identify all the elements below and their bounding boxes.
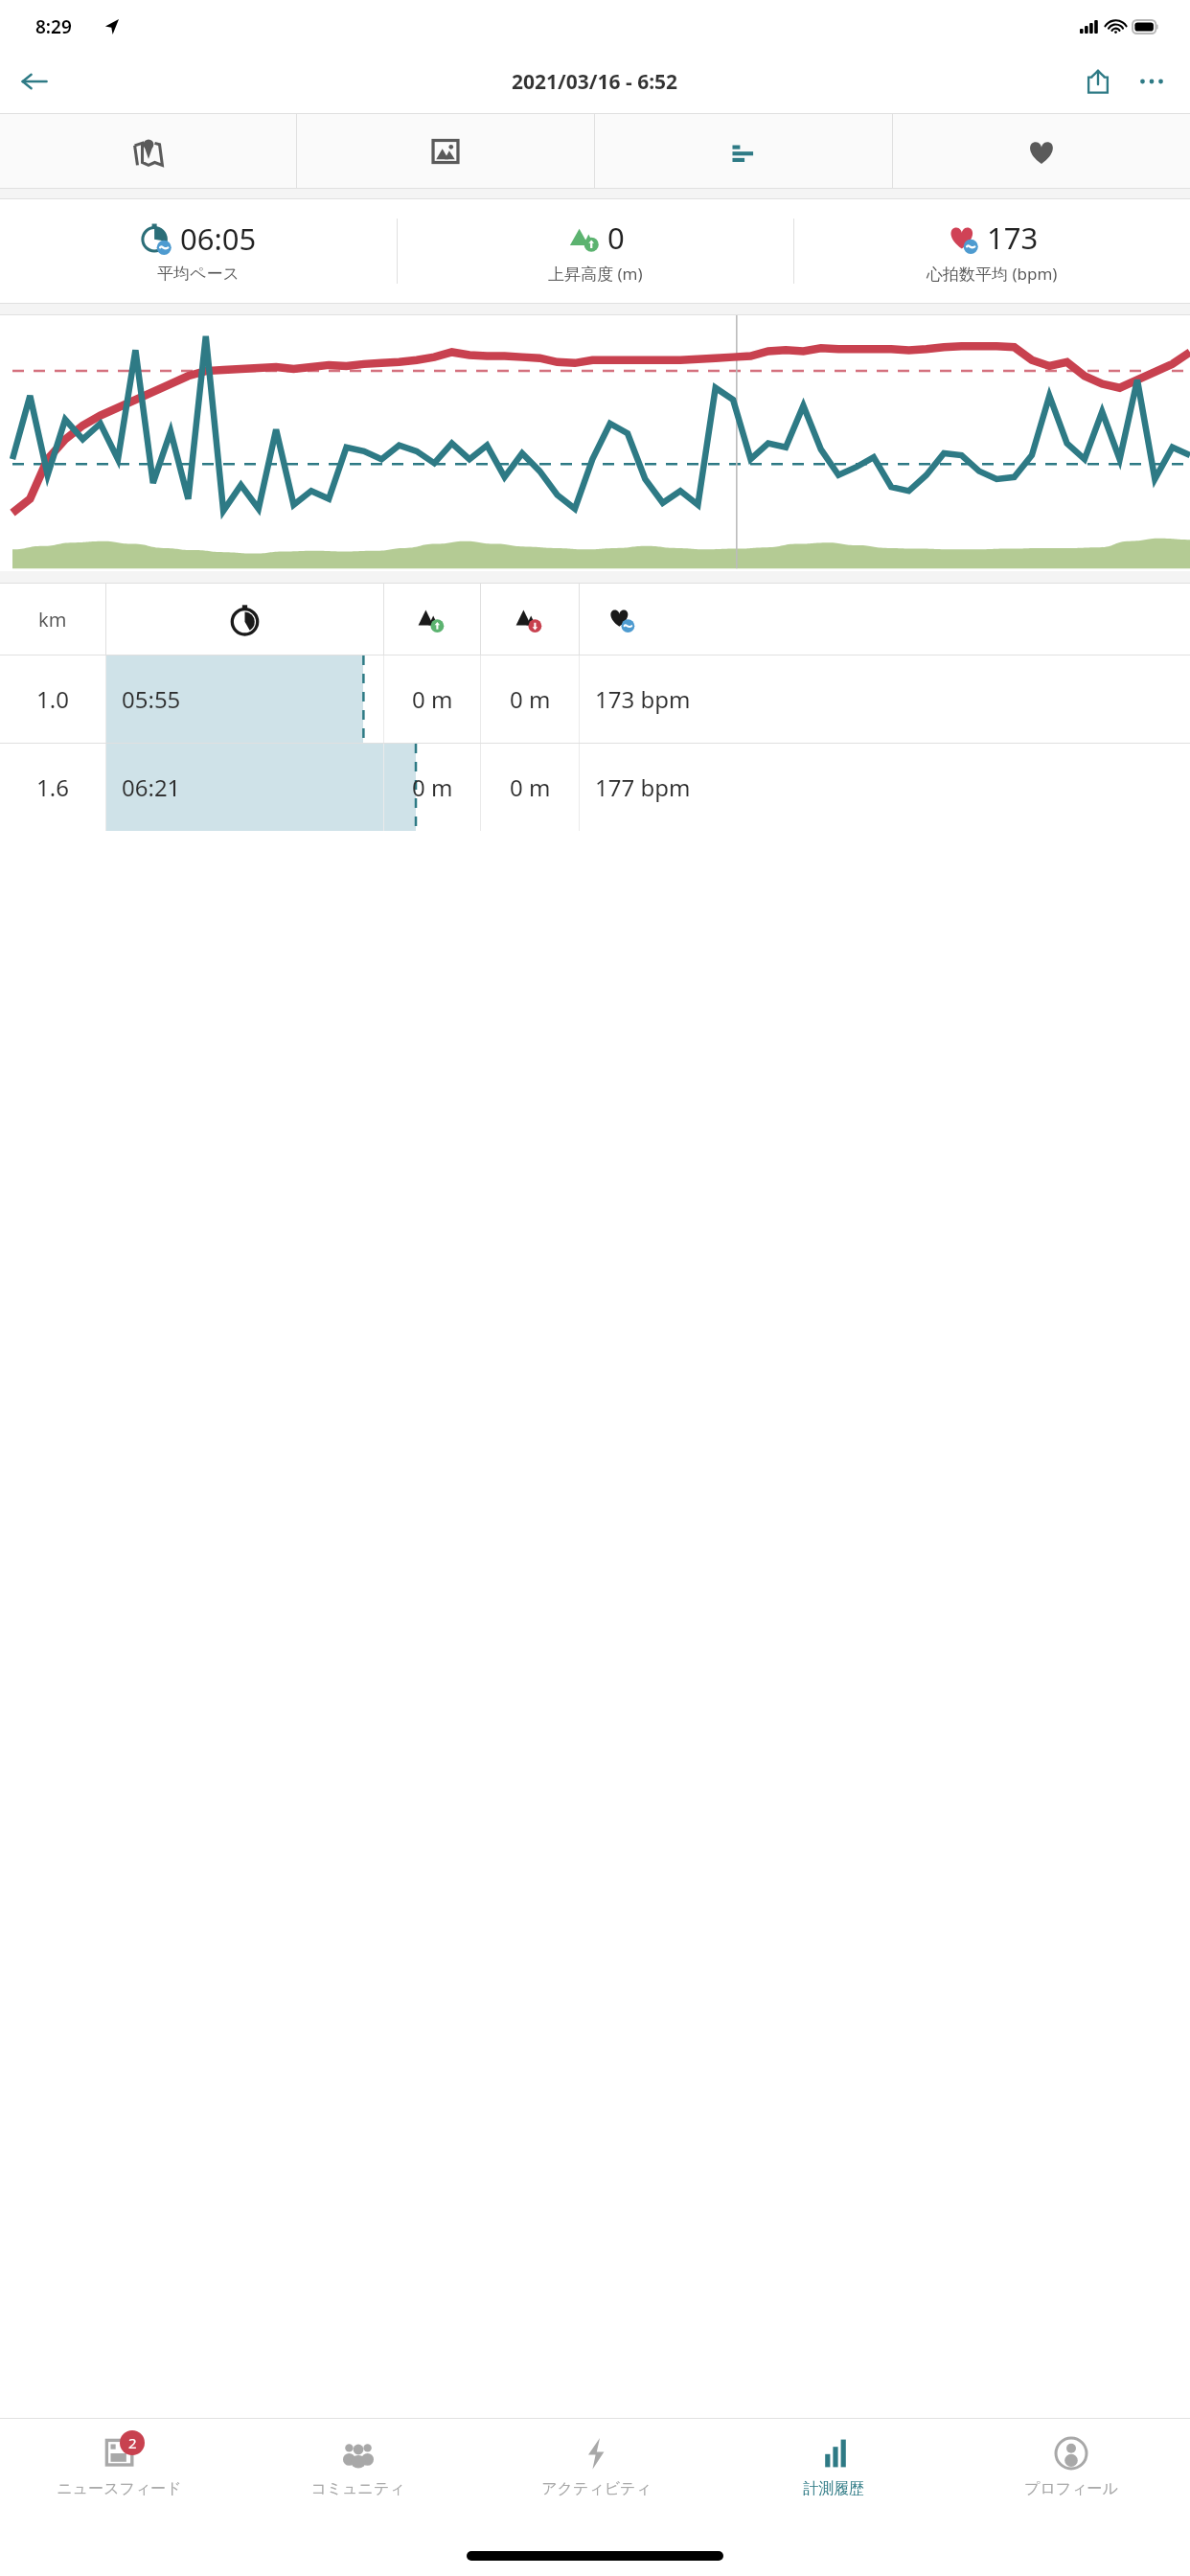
staticText: ニュースフィード: [57, 2479, 182, 2498]
staticText: 1.0: [36, 683, 69, 715]
button[interactable]: 06:05: [0, 199, 397, 303]
staticText: 177 bpm: [595, 771, 691, 803]
button[interactable]: Map tab: [0, 114, 296, 188]
staticText: 上昇高度 (m): [548, 263, 643, 285]
button[interactable]: 1.6: [0, 744, 1190, 831]
button[interactable]: 0: [398, 199, 793, 303]
staticText: 0 m: [510, 771, 551, 803]
button[interactable]: Heart rate tab: [893, 114, 1190, 188]
staticText: 8:29: [35, 14, 72, 39]
staticText: 0 m: [412, 771, 453, 803]
button[interactable]: 173: [794, 199, 1190, 303]
button[interactable]: Photos tab: [297, 114, 594, 188]
button[interactable]: Charts tab: [595, 114, 892, 188]
staticText: 173: [987, 218, 1039, 258]
button[interactable]: Share: [1071, 55, 1125, 108]
staticText: 0 m: [412, 683, 453, 715]
staticText: コミュニティ: [310, 2479, 405, 2498]
staticText: 1.6: [36, 771, 69, 803]
staticText: 05:55: [122, 683, 181, 715]
button[interactable]: 2: [0, 2419, 239, 2543]
button[interactable]: プロフィール: [952, 2419, 1190, 2543]
staticText: 計測履歴: [803, 2479, 864, 2498]
staticText: 平均ペース: [157, 264, 240, 284]
staticText: km: [38, 607, 67, 632]
button[interactable]: Back: [8, 55, 61, 108]
button[interactable]: アクティビティ: [477, 2419, 715, 2543]
staticText: 06:21: [122, 771, 181, 803]
button[interactable]: 計測履歴: [715, 2419, 952, 2543]
staticText: 173 bpm: [595, 683, 691, 715]
staticText: 0 m: [510, 683, 551, 715]
button[interactable]: More options: [1125, 55, 1179, 108]
staticText: 06:05: [180, 218, 257, 259]
staticText: アクティビティ: [541, 2479, 652, 2498]
button[interactable]: 1.0: [0, 655, 1190, 743]
button[interactable]: コミュニティ: [239, 2419, 477, 2543]
staticText: 2021/03/16 - 6:52: [512, 68, 678, 96]
staticText: プロフィール: [1024, 2479, 1118, 2498]
staticText: 2: [128, 2433, 137, 2452]
staticText: 心拍数平均 (bpm): [927, 263, 1058, 285]
staticText: 0: [607, 218, 625, 258]
